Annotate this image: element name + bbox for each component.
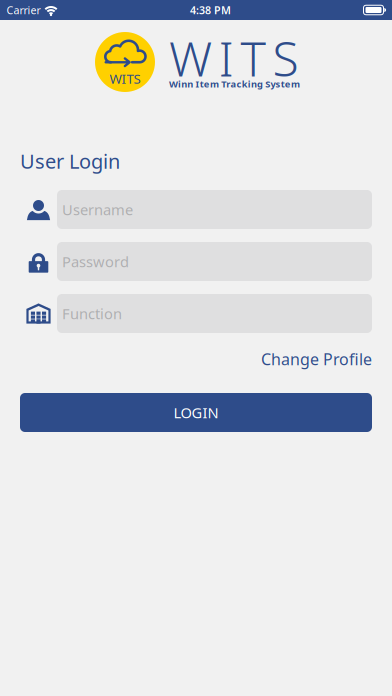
staticText: WITS — [109, 70, 140, 87]
staticText: User Login — [20, 148, 120, 174]
staticText: 4:38 PM — [190, 3, 231, 17]
staticText: Password — [62, 252, 129, 271]
staticText: Username — [62, 200, 133, 219]
staticText: Change Profile — [261, 348, 372, 370]
staticText: Carrier — [6, 3, 40, 17]
button[interactable]: Change Profile — [20, 348, 372, 370]
button[interactable]: LOGIN — [20, 393, 372, 432]
staticText: Function — [62, 304, 122, 323]
staticText: WITS — [169, 26, 298, 90]
staticText: LOGIN — [173, 403, 218, 422]
staticText: Winn Item Tracking System — [169, 78, 300, 90]
